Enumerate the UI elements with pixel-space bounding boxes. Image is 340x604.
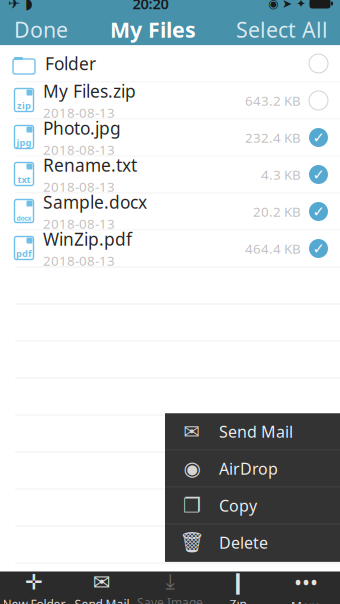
staticText: 232.4 KB — [245, 129, 301, 146]
button[interactable]: pdf — [0, 230, 340, 267]
button[interactable]: txt — [0, 156, 340, 193]
staticText: 20.2 KB — [253, 203, 301, 220]
staticText: jpg — [16, 136, 31, 148]
staticText: Select All — [236, 15, 328, 44]
staticText: ➤ — [282, 0, 292, 10]
staticText: Send Mail — [74, 596, 129, 604]
staticText: Photo.jpg — [43, 117, 121, 140]
staticText: Delete — [219, 532, 268, 553]
staticText: WinZip.pdf — [43, 228, 132, 251]
staticText: 2018-08-13 — [43, 104, 115, 121]
button[interactable]: 🗑 — [165, 524, 340, 561]
staticText: Zip — [229, 596, 246, 604]
staticText: AirDrop — [219, 458, 278, 479]
staticText: ⤓ — [165, 572, 174, 592]
staticText: More — [291, 598, 321, 604]
staticText: ❐ — [183, 494, 201, 517]
button[interactable]: Done — [0, 13, 82, 45]
staticText: ◉ — [268, 0, 278, 10]
staticText: ••• — [294, 568, 318, 596]
staticText: docx — [16, 214, 31, 222]
staticText: Sample.docx — [43, 191, 147, 214]
button[interactable]: ✉ — [68, 571, 136, 604]
staticText: Done — [14, 15, 68, 44]
button[interactable]: ⤓ — [136, 571, 204, 604]
staticText: My Files.zip — [43, 80, 136, 103]
staticText: 2018-08-13 — [43, 178, 115, 195]
staticText: ✉ — [93, 570, 111, 594]
staticText: ✓ — [312, 203, 324, 220]
staticText: zip — [17, 99, 31, 111]
staticText: pdf — [16, 247, 32, 259]
staticText: ✓ — [312, 166, 324, 183]
staticText: Send Mail — [219, 421, 293, 442]
button[interactable]: ◉ — [165, 450, 340, 487]
staticText: 4.3 KB — [261, 166, 301, 183]
staticText: ◗ — [25, 0, 33, 12]
staticText: txt — [17, 173, 30, 185]
staticText: ✛ — [25, 570, 43, 594]
staticText: 2018-08-13 — [43, 215, 115, 232]
staticText: 20:20 — [132, 0, 168, 13]
staticText: ❙ — [229, 570, 247, 594]
staticText: Folder — [45, 52, 96, 75]
staticText: My Files — [110, 15, 196, 44]
staticText: 2018-08-13 — [43, 141, 115, 158]
staticText: 464.4 KB — [245, 240, 301, 257]
button[interactable]: ✉ — [165, 413, 340, 450]
staticText: ✦ — [296, 0, 306, 10]
button[interactable]: Folder — [0, 45, 340, 82]
button[interactable]: ✛ — [0, 571, 68, 604]
staticText: ✓ — [312, 240, 324, 257]
button[interactable]: Select All — [224, 13, 340, 45]
staticText: Save Image — [137, 594, 203, 604]
button[interactable]: docx — [0, 193, 340, 230]
button[interactable]: ❙ — [204, 571, 272, 604]
button[interactable]: ••• — [272, 571, 340, 604]
staticText: ◉ — [183, 457, 200, 480]
staticText: New Folder — [2, 596, 65, 604]
staticText: ✉ — [183, 420, 200, 443]
staticText: Copy — [219, 495, 257, 516]
staticText: 🗑 — [179, 531, 204, 554]
staticText: Rename.txt — [43, 154, 137, 177]
button[interactable]: ❐ — [165, 487, 340, 524]
staticText: ✈ — [8, 0, 20, 12]
button[interactable]: jpg — [0, 119, 340, 156]
staticText: ✓ — [312, 129, 324, 146]
staticText: 2018-08-13 — [43, 252, 115, 269]
button[interactable]: zip — [0, 82, 340, 119]
staticText: 643.2 KB — [245, 92, 301, 109]
